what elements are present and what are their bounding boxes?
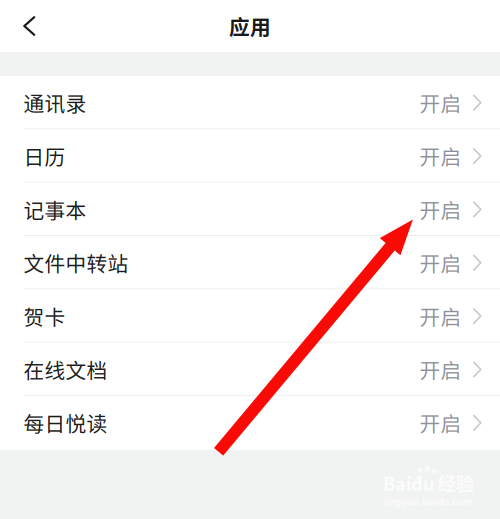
- staticText: 记事本: [23, 194, 86, 224]
- staticText: 开启: [419, 301, 461, 331]
- staticText: 通讯录: [23, 88, 86, 118]
- staticText: 开启: [419, 194, 461, 224]
- button[interactable]: 日历: [0, 129, 500, 183]
- staticText: 开启: [419, 408, 461, 438]
- staticText: 开启: [419, 354, 461, 384]
- staticText: 应用: [229, 11, 271, 41]
- button[interactable]: 文件中转站: [0, 236, 500, 289]
- button[interactable]: 贺卡: [0, 289, 500, 343]
- staticText: Baidu 经验: [383, 470, 474, 496]
- staticText: 开启: [419, 88, 461, 118]
- staticText: 开启: [419, 248, 461, 278]
- button[interactable]: 每日悦读: [0, 396, 500, 450]
- button[interactable]: 通讯录: [0, 76, 500, 129]
- staticText: 日历: [23, 141, 65, 171]
- button[interactable]: Back: [0, 0, 51, 52]
- button[interactable]: 在线文档: [0, 343, 500, 396]
- button[interactable]: 记事本: [0, 183, 500, 236]
- staticText: 在线文档: [23, 354, 107, 384]
- staticText: 文件中转站: [23, 248, 128, 278]
- staticText: 开启: [419, 141, 461, 171]
- staticText: 贺卡: [23, 301, 65, 331]
- staticText: 每日悦读: [23, 408, 107, 438]
